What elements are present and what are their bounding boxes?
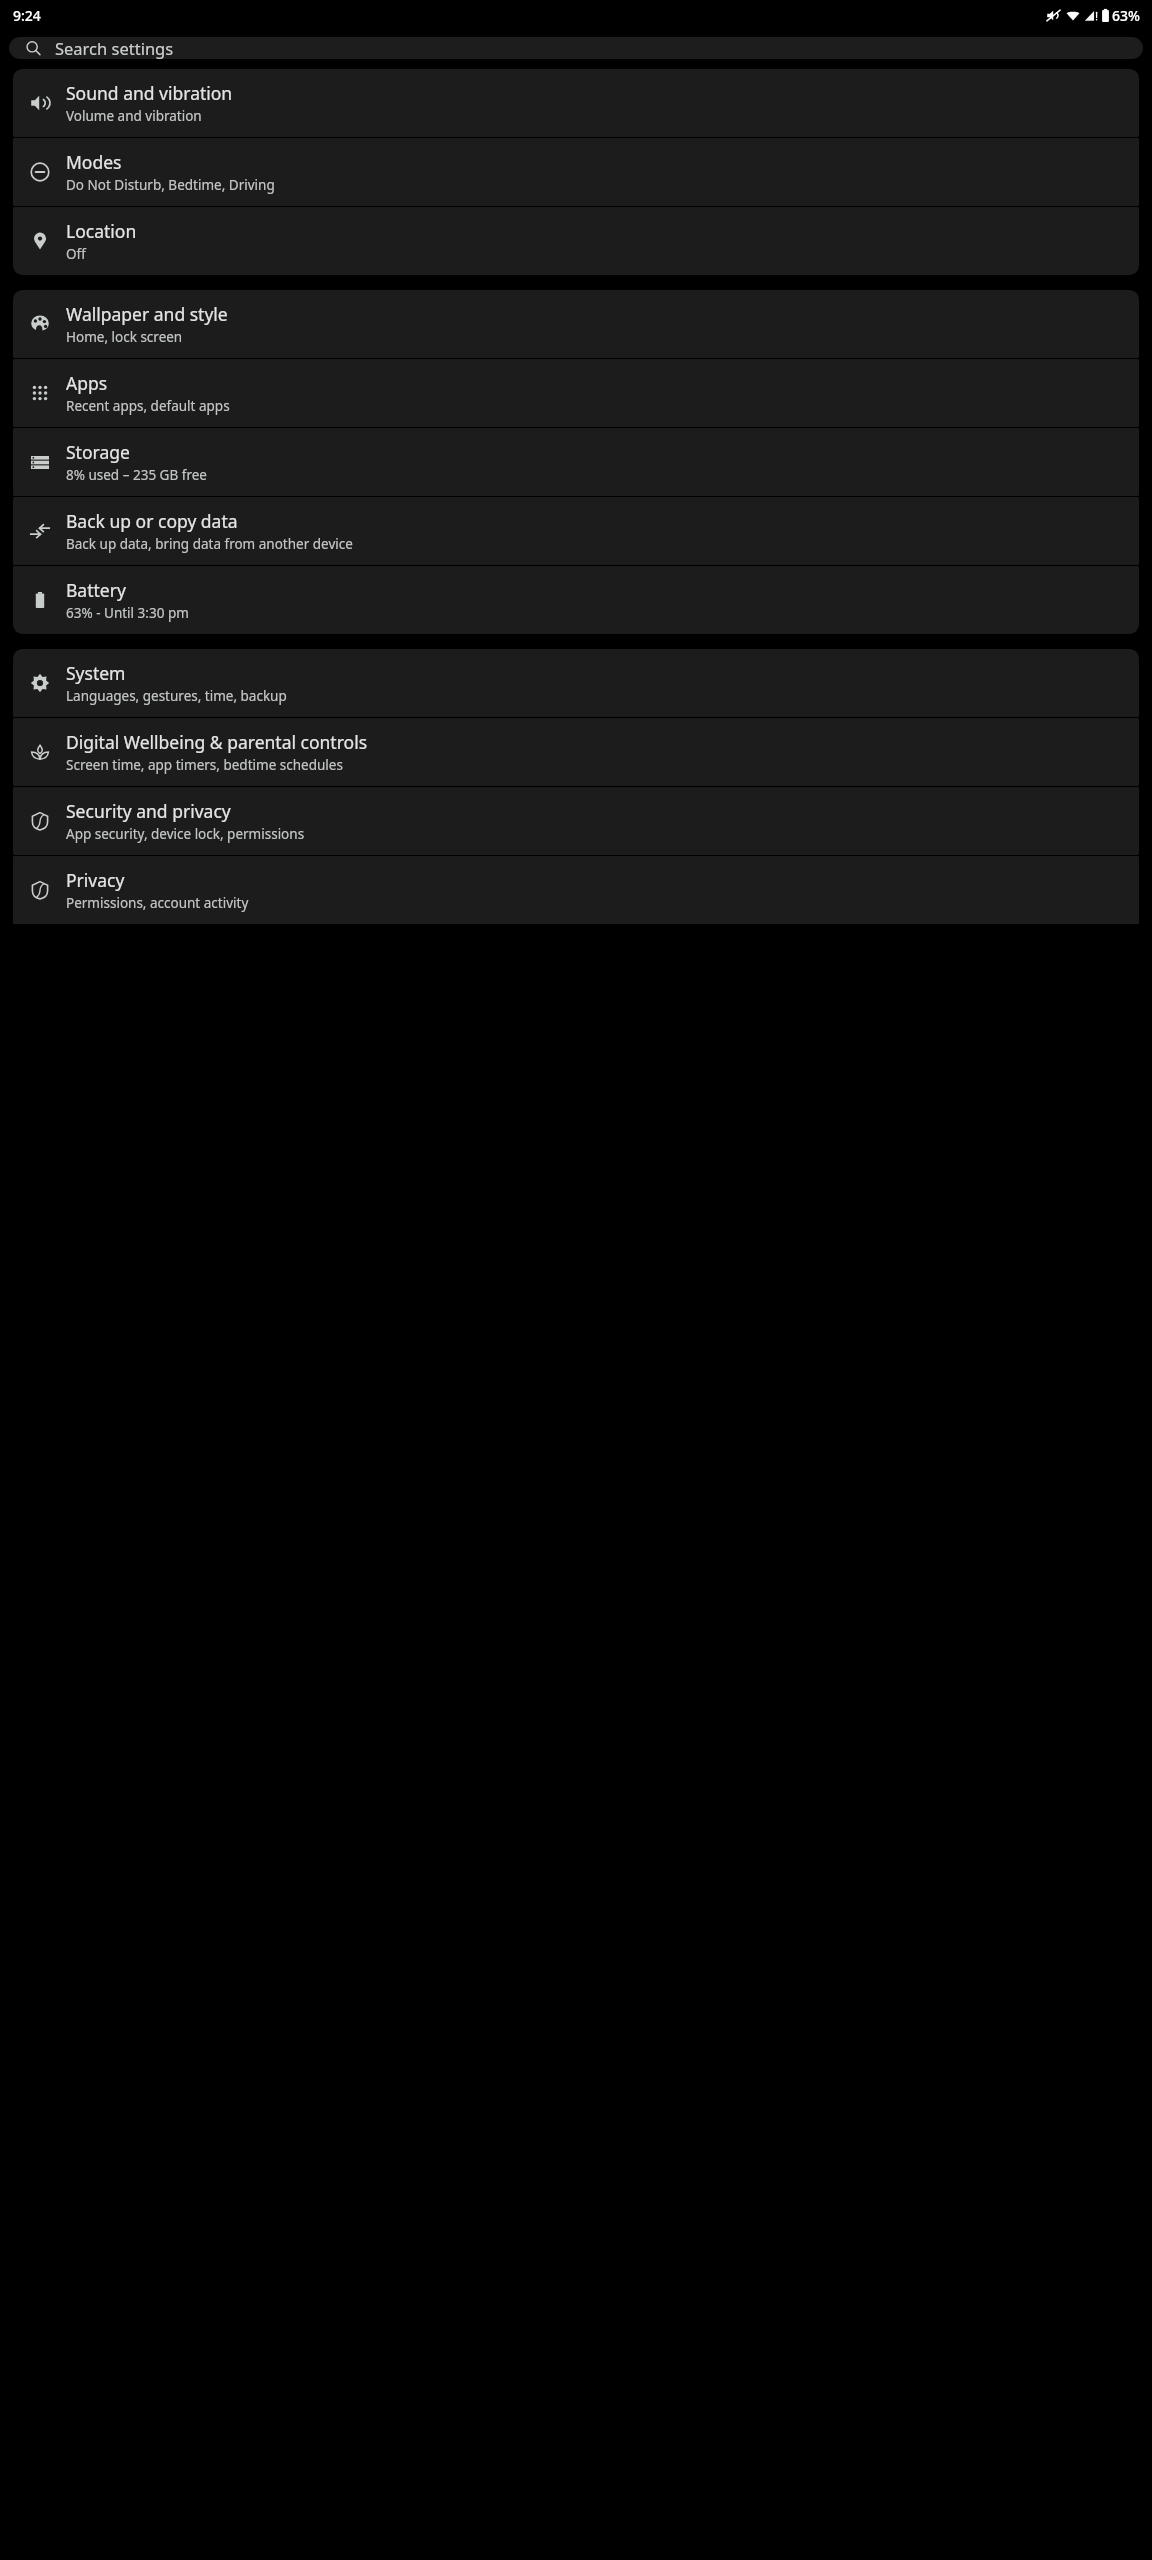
button[interactable]: Privacy	[13, 856, 1139, 924]
button[interactable]: Apps	[13, 359, 1139, 427]
staticText: Back up or copy data	[66, 509, 238, 533]
staticText: Off	[66, 245, 86, 263]
button[interactable]: Battery	[13, 566, 1139, 634]
staticText: Modes	[66, 150, 122, 174]
button[interactable]: Security and privacy	[13, 787, 1139, 855]
staticText: Search settings	[55, 37, 174, 59]
staticText: System	[66, 661, 126, 685]
staticText: Permissions, account activity	[66, 894, 249, 912]
staticText: Volume and vibration	[66, 107, 202, 125]
button[interactable]: Storage	[13, 428, 1139, 496]
button[interactable]: Search settings	[9, 37, 1143, 59]
staticText: Security and privacy	[66, 799, 231, 823]
button[interactable]: Back up or copy data	[13, 497, 1139, 565]
button[interactable]: System	[13, 649, 1139, 717]
staticText: Location	[66, 219, 137, 243]
staticText: Apps	[66, 371, 108, 395]
button[interactable]: Digital Wellbeing & parental controls	[13, 718, 1139, 786]
staticText: Screen time, app timers, bedtime schedul…	[66, 756, 343, 774]
staticText: Do Not Disturb, Bedtime, Driving	[66, 176, 275, 194]
staticText: Privacy	[66, 868, 125, 892]
staticText: Storage	[66, 440, 130, 464]
staticText: Languages, gestures, time, backup	[66, 687, 287, 705]
staticText: Back up data, bring data from another de…	[66, 535, 353, 553]
staticText: App security, device lock, permissions	[66, 825, 305, 843]
staticText: Sound and vibration	[66, 81, 233, 105]
staticText: 63%	[1112, 6, 1140, 25]
button[interactable]: Modes	[13, 138, 1139, 206]
staticText: 9:24	[13, 6, 41, 25]
staticText: 63% - Until 3:30 pm	[66, 604, 189, 622]
button[interactable]: Location	[13, 207, 1139, 275]
staticText: Battery	[66, 578, 126, 602]
staticText: Wallpaper and style	[66, 302, 228, 326]
staticText: Recent apps, default apps	[66, 397, 230, 415]
button[interactable]: Wallpaper and style	[13, 290, 1139, 358]
button[interactable]: Sound and vibration	[13, 69, 1139, 137]
staticText: Digital Wellbeing & parental controls	[66, 730, 368, 754]
staticText: Home, lock screen	[66, 328, 183, 346]
staticText: 8% used – 235 GB free	[66, 466, 207, 484]
